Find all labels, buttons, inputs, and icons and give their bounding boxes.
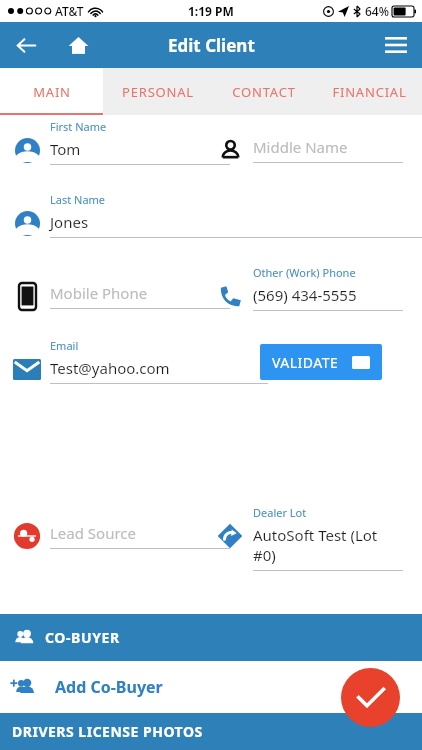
- button[interactable]: Middle Name: [211, 119, 403, 181]
- staticText: Other (Work) Phone: [253, 265, 356, 280]
- staticText: Mobile Phone: [50, 283, 148, 303]
- button[interactable]: Menu: [376, 25, 416, 65]
- button[interactable]: Mobile Phone: [8, 265, 230, 327]
- button[interactable]: Last Name: [8, 192, 422, 254]
- button[interactable]: First Name: [8, 119, 230, 181]
- staticText: Jones: [50, 212, 89, 232]
- button[interactable]: VALIDATE: [260, 344, 382, 380]
- button[interactable]: CONTACT: [212, 68, 316, 115]
- staticText: Lead Source: [50, 523, 136, 543]
- staticText: Tom: [50, 139, 81, 159]
- staticText: CO-BUYER: [45, 628, 120, 647]
- staticText: Middle Name: [253, 137, 348, 157]
- button[interactable]: CO-BUYER: [0, 614, 422, 661]
- staticText: FINANCIAL: [332, 83, 407, 101]
- button[interactable]: MAIN: [0, 68, 103, 115]
- staticText: Dealer Lot: [253, 505, 307, 520]
- button[interactable]: FINANCIAL: [316, 68, 422, 115]
- button[interactable]: Lead Source: [8, 505, 230, 567]
- staticText: Test@yahoo.com: [50, 358, 170, 378]
- button[interactable]: Back: [6, 25, 46, 65]
- staticText: CONTACT: [232, 83, 296, 101]
- button[interactable]: Other (Work) Phone: [211, 265, 403, 327]
- staticText: AutoSoft Test (Lot #0): [253, 525, 403, 565]
- button[interactable]: PERSONAL: [103, 68, 212, 115]
- staticText: AT&T: [55, 3, 84, 19]
- staticText: DRIVERS LICENSE PHOTOS: [12, 722, 203, 741]
- staticText: PERSONAL: [122, 83, 194, 101]
- staticText: (569) 434-5555: [253, 285, 357, 305]
- button[interactable]: Email: [8, 338, 268, 400]
- staticText: 1:19 PM: [188, 3, 234, 19]
- button[interactable]: Save: [341, 668, 400, 727]
- staticText: Last Name: [50, 192, 106, 207]
- staticText: VALIDATE: [272, 353, 339, 372]
- staticText: Add Co-Buyer: [55, 676, 163, 698]
- staticText: Email: [50, 338, 79, 353]
- staticText: First Name: [50, 119, 107, 134]
- staticText: 64%: [365, 3, 389, 19]
- staticText: MAIN: [33, 83, 71, 101]
- button[interactable]: Home: [58, 25, 98, 65]
- button[interactable]: DRIVERS LICENSE PHOTOS: [0, 713, 422, 750]
- button[interactable]: Dealer Lot: [211, 505, 403, 571]
- staticText: Edit Client: [168, 34, 255, 57]
- button[interactable]: Add Co-Buyer: [0, 661, 422, 713]
